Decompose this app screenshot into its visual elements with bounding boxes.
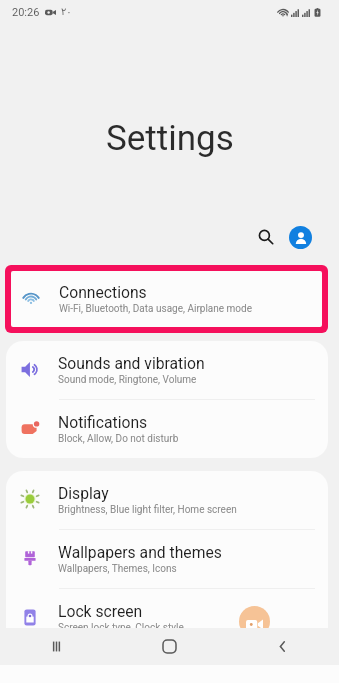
button[interactable]: Sounds and vibration — [6, 341, 328, 399]
staticText: Sound mode, Ringtone, Volume — [58, 374, 197, 386]
button[interactable]: Recents — [0, 628, 113, 665]
button[interactable]: Connections — [11, 271, 322, 327]
button[interactable]: Account — [289, 226, 312, 249]
staticText: Block, Allow, Do not disturb — [58, 433, 179, 445]
button[interactable]: Back — [226, 628, 339, 665]
staticText: Wi-Fi, Bluetooth, Data usage, Airplane m… — [59, 303, 252, 315]
staticText: Wallpapers and themes — [58, 543, 222, 561]
staticText: Sounds and vibration — [58, 354, 205, 372]
staticText: Settings — [106, 118, 234, 159]
button[interactable]: Home — [113, 628, 226, 665]
staticText: ٢٠ — [61, 6, 72, 18]
button[interactable]: Search — [254, 225, 278, 249]
button[interactable]: Notifications — [6, 400, 328, 458]
staticText: Brightness, Blue light filter, Home scre… — [58, 504, 237, 516]
staticText: Notifications — [58, 413, 148, 431]
button[interactable]: Lock screen — [6, 589, 328, 646]
staticText: Connections — [59, 283, 147, 301]
staticText: 20:26 — [12, 6, 40, 19]
button[interactable]: Screen recorder — [239, 606, 270, 637]
button[interactable]: Wallpapers and themes — [6, 530, 328, 588]
staticText: Lock screen — [58, 602, 143, 620]
staticText: Screen lock type, Clock style — [58, 622, 184, 634]
staticText: Wallpapers, Themes, Icons — [58, 563, 177, 575]
button[interactable]: Display — [6, 471, 328, 529]
button[interactable]: Connections — [11, 271, 322, 327]
staticText: Display — [58, 484, 109, 502]
